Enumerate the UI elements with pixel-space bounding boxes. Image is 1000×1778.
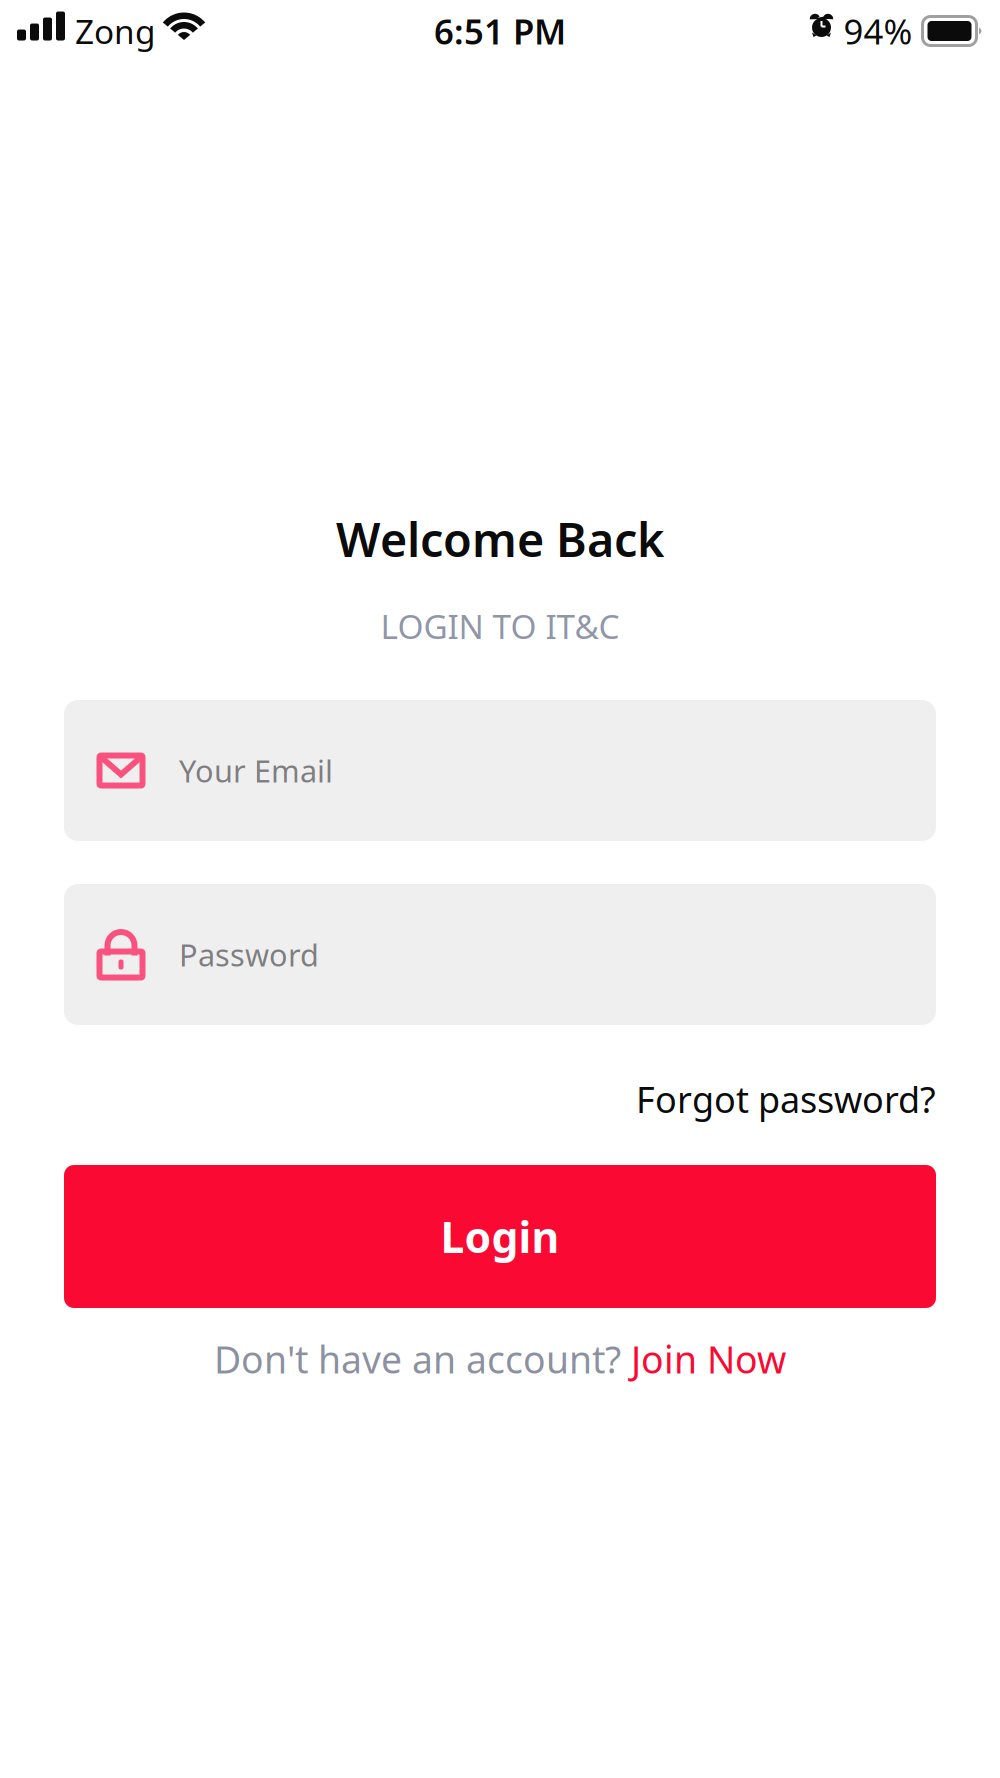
staticText: Your Email	[179, 750, 333, 791]
button[interactable]: Password	[64, 884, 936, 1025]
button[interactable]: Forgot password?	[636, 1077, 936, 1121]
staticText: Forgot password?	[636, 1075, 936, 1123]
staticText: Zong	[75, 9, 156, 53]
staticText: Password	[179, 934, 319, 975]
staticText: Don't have an account?	[214, 1334, 631, 1384]
staticText: 94%	[843, 8, 912, 54]
staticText: Login	[440, 1208, 559, 1265]
button[interactable]: Login	[64, 1165, 936, 1308]
staticText: LOGIN TO IT&C	[380, 604, 619, 648]
staticText: Welcome Back	[336, 508, 664, 570]
button[interactable]: Your Email	[64, 700, 936, 841]
button[interactable]: Don't have an account?	[214, 1308, 786, 1381]
staticText: 6:51 PM	[434, 8, 566, 54]
staticText: Join Now	[631, 1334, 786, 1384]
